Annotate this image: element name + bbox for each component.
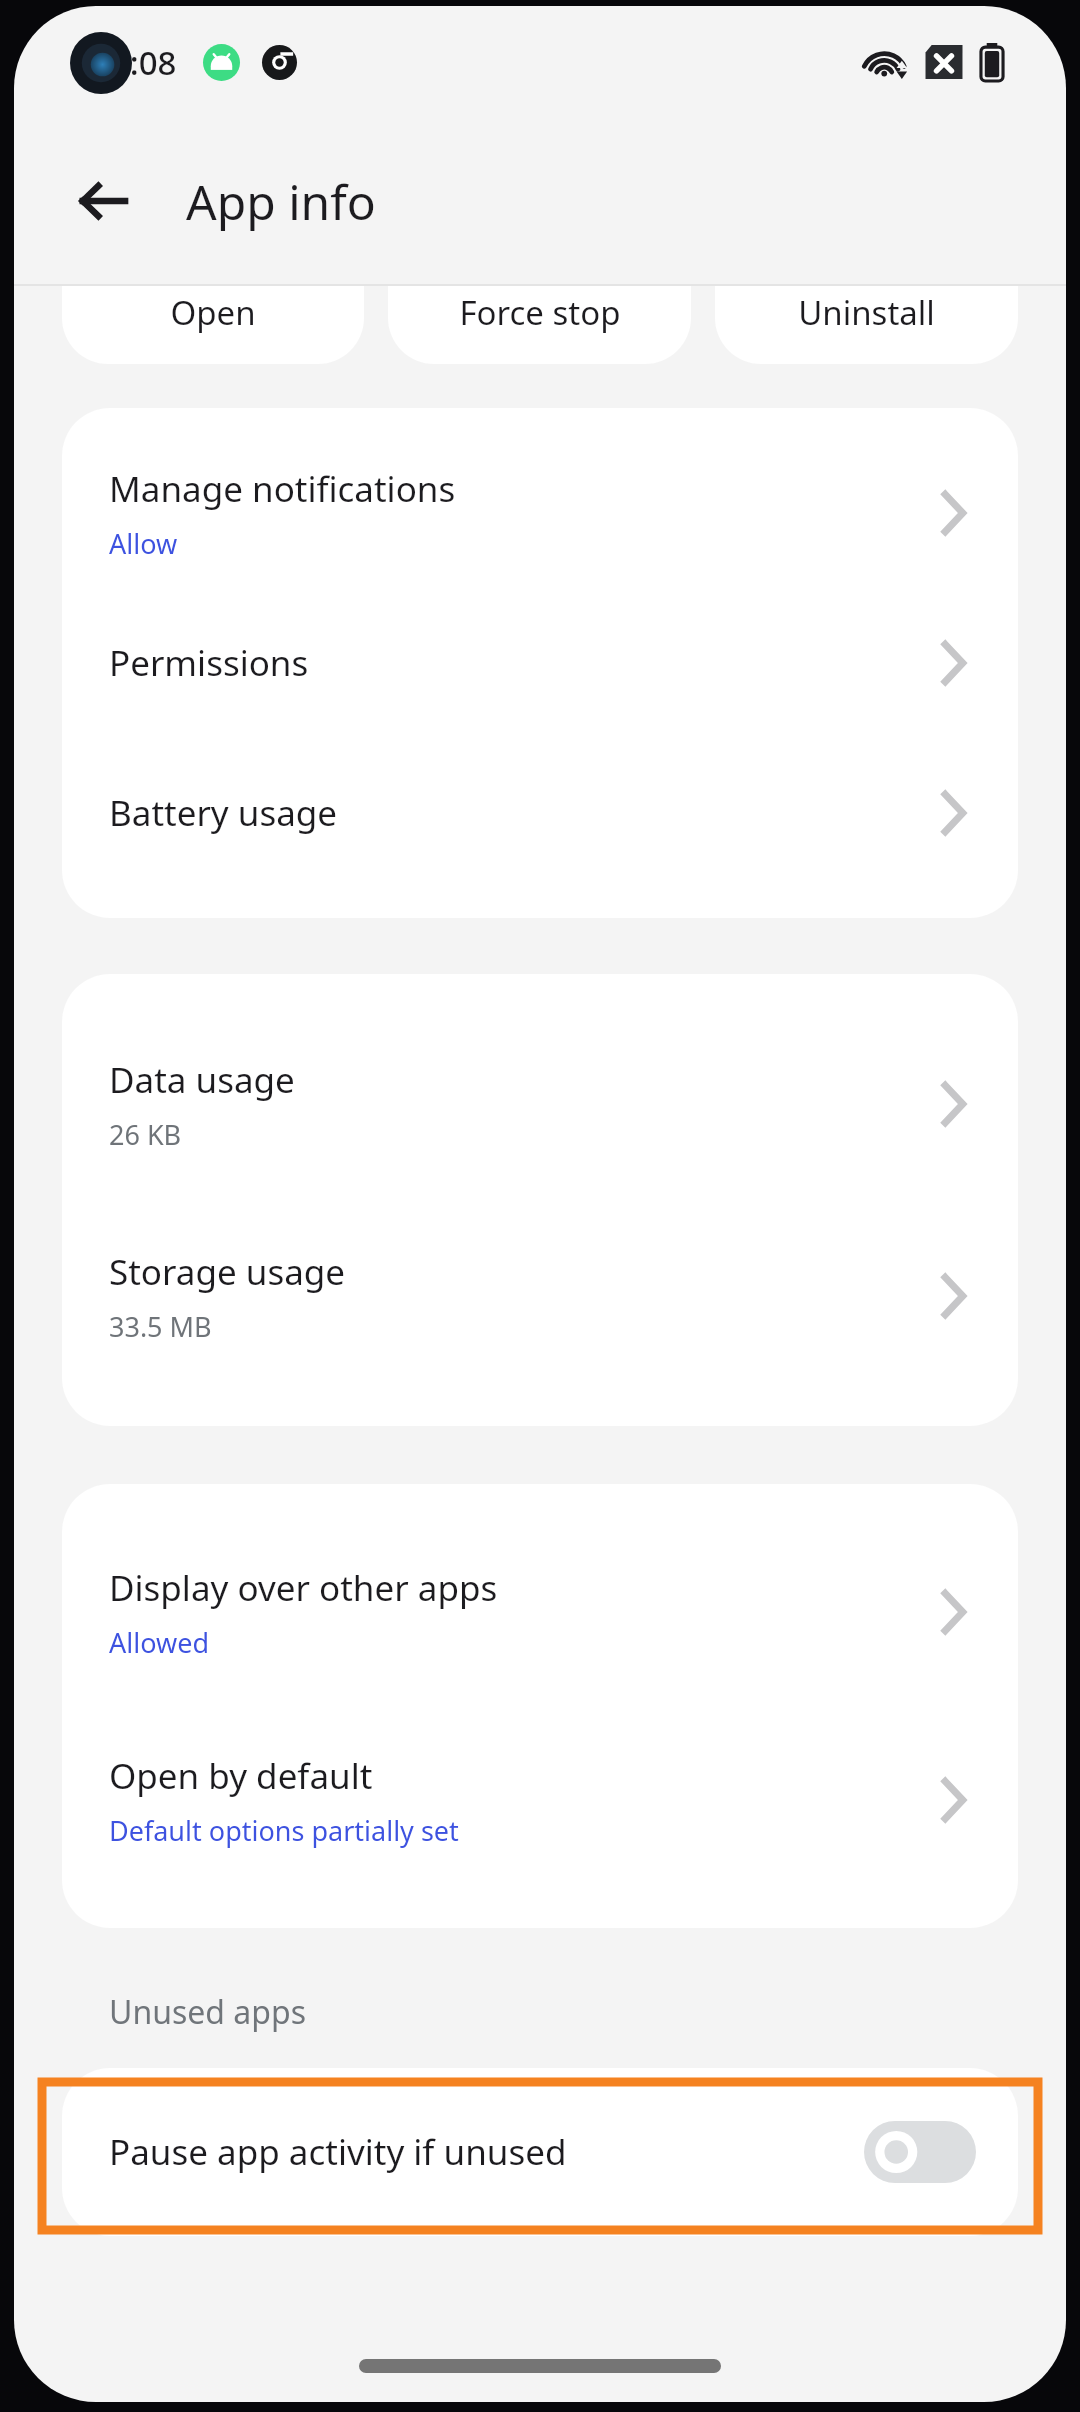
- staticText: Force stop: [459, 290, 621, 335]
- button[interactable]: Open: [62, 286, 364, 364]
- staticText: Data usage: [109, 1056, 295, 1104]
- staticText: Manage notifications: [109, 465, 456, 513]
- staticText: Display over other apps: [109, 1564, 498, 1612]
- staticText: 26 KB: [109, 1116, 182, 1153]
- staticText: Open by default: [109, 1752, 373, 1800]
- staticText: Allow: [109, 525, 178, 562]
- staticText: Default options partially set: [109, 1812, 459, 1849]
- staticText: Open: [170, 290, 256, 335]
- button[interactable]: Uninstall: [715, 286, 1018, 364]
- staticText: 10:08: [92, 40, 177, 85]
- staticText: Pause app activity if unused: [109, 2128, 567, 2176]
- button[interactable]: Back: [62, 160, 144, 242]
- staticText: Allowed: [109, 1624, 210, 1661]
- staticText: Storage usage: [109, 1248, 346, 1296]
- button[interactable]: Manage notifications: [62, 438, 1018, 588]
- staticText: App info: [186, 169, 376, 234]
- button[interactable]: Force stop: [388, 286, 691, 364]
- staticText: Unused apps: [109, 1990, 306, 2034]
- button[interactable]: Data usage: [62, 1008, 1018, 1200]
- staticText: Uninstall: [798, 290, 935, 335]
- button[interactable]: Pause app activity if unused: [62, 2068, 1018, 2236]
- staticText: Permissions: [109, 639, 309, 687]
- staticText: 33.5 MB: [109, 1308, 212, 1345]
- button[interactable]: Open by default: [62, 1706, 1018, 1894]
- button[interactable]: Permissions: [62, 588, 1018, 738]
- staticText: Battery usage: [109, 789, 338, 837]
- button[interactable]: Storage usage: [62, 1200, 1018, 1392]
- button[interactable]: Battery usage: [62, 738, 1018, 888]
- button[interactable]: Display over other apps: [62, 1518, 1018, 1706]
- button[interactable]: Pause app activity if unused toggle: [864, 2121, 976, 2183]
